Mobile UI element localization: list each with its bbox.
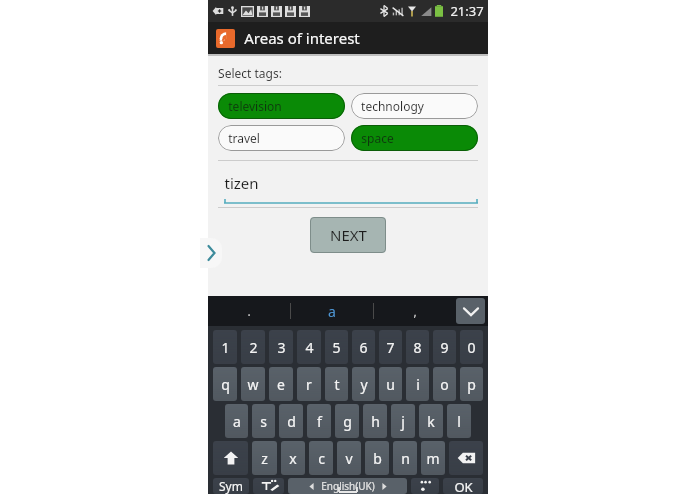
button[interactable]: o	[433, 367, 456, 401]
button[interactable]: NEXT	[310, 217, 386, 253]
staticText: 8	[413, 338, 422, 357]
staticText: l	[457, 412, 461, 431]
button[interactable]: .	[208, 296, 290, 326]
button[interactable]: Sym	[213, 478, 249, 494]
button[interactable]: e	[269, 367, 293, 401]
staticText: television	[228, 98, 282, 114]
button[interactable]: q	[213, 367, 237, 401]
button[interactable]: 6	[352, 330, 375, 364]
button[interactable]: n	[393, 441, 417, 475]
button[interactable]: technology	[351, 93, 478, 119]
button[interactable]: Backspace	[449, 441, 483, 475]
button[interactable]: space	[351, 125, 478, 151]
staticText: Select tags:	[218, 65, 282, 81]
staticText: o	[440, 375, 449, 394]
staticText: u	[386, 375, 395, 394]
button[interactable]: 4	[297, 330, 321, 364]
button[interactable]: i	[406, 367, 429, 401]
staticText: OK	[454, 478, 473, 494]
staticText: 6	[359, 338, 368, 357]
button[interactable]: s	[252, 404, 275, 438]
staticText: r	[306, 375, 312, 394]
staticText: Sym	[219, 478, 243, 494]
button[interactable]: h	[363, 404, 387, 438]
button[interactable]: v	[337, 441, 361, 475]
staticText: a	[328, 302, 336, 321]
button[interactable]: Open panel	[200, 238, 222, 268]
button[interactable]: Expand suggestions	[456, 298, 485, 324]
button[interactable]: English(UK)	[288, 478, 407, 494]
staticText: space	[361, 130, 394, 146]
button[interactable]: 2	[241, 330, 265, 364]
staticText: 5	[332, 338, 341, 357]
staticText: 7	[386, 338, 395, 357]
button[interactable]: 8	[406, 330, 429, 364]
button[interactable]: 7	[379, 330, 402, 364]
staticText: q	[221, 375, 230, 394]
button[interactable]: television	[218, 93, 345, 119]
staticText: 4	[305, 338, 314, 357]
staticText: 21:37	[450, 2, 484, 20]
button[interactable]: tizen	[224, 173, 478, 205]
staticText: y	[360, 375, 368, 394]
button[interactable]: c	[309, 441, 333, 475]
button[interactable]: 1	[213, 330, 237, 364]
staticText: w	[247, 375, 259, 394]
button[interactable]: travel	[218, 125, 345, 151]
button[interactable]: OK	[443, 478, 483, 494]
staticText: i	[416, 375, 420, 394]
staticText: .	[247, 303, 251, 319]
button[interactable]: m	[421, 441, 445, 475]
staticText: 9	[440, 338, 449, 357]
staticText: p	[467, 375, 476, 394]
staticText: 2	[249, 338, 258, 357]
button[interactable]: a	[291, 296, 373, 326]
button[interactable]: t	[325, 367, 348, 401]
button[interactable]: 5	[325, 330, 348, 364]
staticText: a	[233, 412, 241, 431]
staticText: v	[345, 449, 353, 468]
button[interactable]: k	[419, 404, 443, 438]
button[interactable]: a	[225, 404, 248, 438]
staticText: n	[401, 449, 410, 468]
button[interactable]: g	[335, 404, 359, 438]
button[interactable]: j	[391, 404, 415, 438]
button[interactable]: 0	[460, 330, 483, 364]
button[interactable]: b	[365, 441, 389, 475]
button[interactable]: y	[352, 367, 375, 401]
button[interactable]: x	[281, 441, 305, 475]
button[interactable]: 9	[433, 330, 456, 364]
button[interactable]: Punctuation	[411, 478, 439, 494]
button[interactable]: r	[297, 367, 321, 401]
button[interactable]: Shift	[213, 441, 248, 475]
staticText: English(UK)	[321, 479, 375, 493]
button[interactable]: l	[447, 404, 471, 438]
staticText: 1	[221, 338, 230, 357]
staticText: c	[318, 449, 325, 468]
button[interactable]: Handwriting	[253, 478, 284, 494]
staticText: m	[426, 449, 440, 468]
button[interactable]: u	[379, 367, 402, 401]
staticText: NEXT	[330, 225, 367, 245]
button[interactable]: ,	[374, 296, 456, 326]
button[interactable]: 3	[269, 330, 293, 364]
staticText: t	[334, 375, 340, 394]
staticText: z	[261, 449, 268, 468]
staticText: h	[371, 412, 380, 431]
staticText: Areas of interest	[244, 28, 360, 48]
button[interactable]: f	[307, 404, 331, 438]
button[interactable]: z	[252, 441, 277, 475]
staticText: d	[287, 412, 296, 431]
staticText: g	[343, 412, 352, 431]
staticText: b	[373, 449, 382, 468]
button[interactable]: p	[460, 367, 483, 401]
staticText: s	[260, 412, 267, 431]
staticText: ,	[413, 303, 417, 319]
staticText: 0	[467, 338, 476, 357]
staticText: j	[401, 412, 405, 431]
staticText: e	[277, 375, 285, 394]
button[interactable]: w	[241, 367, 265, 401]
staticText: technology	[361, 98, 424, 114]
button[interactable]: d	[279, 404, 303, 438]
staticText: x	[289, 449, 297, 468]
